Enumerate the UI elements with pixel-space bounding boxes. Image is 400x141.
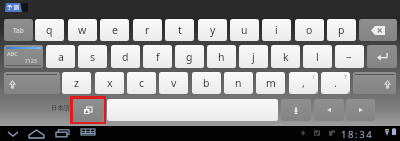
staticText: z — [74, 76, 79, 90]
button[interactable]: Shift — [353, 72, 396, 94]
button[interactable]: Move left — [314, 99, 344, 121]
button[interactable]: Space — [107, 99, 278, 121]
staticText: f — [156, 50, 160, 64]
staticText: j — [252, 50, 255, 64]
button[interactable]: o — [295, 19, 324, 41]
staticText: 日本語 — [51, 104, 70, 112]
staticText: v — [171, 76, 177, 90]
staticText: m — [266, 76, 276, 90]
staticText: l — [316, 50, 319, 64]
button[interactable]: x — [95, 72, 124, 94]
button[interactable]: g — [175, 45, 204, 68]
button[interactable]: c — [127, 72, 156, 94]
button[interactable]: 予測 — [5, 3, 22, 12]
button[interactable]: Home — [29, 130, 44, 138]
staticText: q — [46, 23, 53, 37]
button[interactable]: a — [46, 45, 75, 68]
button[interactable]: Voice input — [281, 99, 311, 121]
button[interactable]: Tab — [4, 19, 33, 41]
button[interactable]: Enter — [367, 45, 397, 68]
button[interactable]: Backspace — [359, 19, 397, 41]
button[interactable]: u — [230, 19, 259, 41]
staticText: Tab — [13, 26, 24, 35]
button[interactable]: y — [198, 19, 227, 41]
staticText: h — [218, 50, 225, 64]
staticText: s — [90, 50, 96, 64]
button[interactable]: l — [303, 45, 332, 68]
staticText: x — [107, 76, 113, 90]
button[interactable]: q — [35, 19, 64, 41]
staticText: . — [334, 76, 337, 90]
button[interactable]: Switch keyboard — [73, 99, 102, 121]
staticText: t — [178, 23, 182, 37]
staticText: b — [203, 76, 210, 90]
staticText: u — [241, 23, 248, 37]
staticText: d — [122, 50, 129, 64]
staticText: 18:34 — [341, 128, 374, 141]
button[interactable]: n — [224, 72, 253, 94]
staticText: − — [346, 50, 353, 64]
staticText: c — [139, 76, 145, 90]
button[interactable]: e — [100, 19, 129, 41]
button[interactable]: p — [327, 19, 356, 41]
button[interactable]: i — [262, 19, 291, 41]
staticText: n — [235, 76, 242, 90]
staticText: w — [78, 23, 87, 37]
button[interactable]: h — [207, 45, 236, 68]
staticText: o — [306, 23, 313, 37]
button[interactable]: . — [321, 72, 350, 94]
button[interactable]: j — [239, 45, 268, 68]
button[interactable]: k — [271, 45, 300, 68]
button[interactable]: Hide keyboard — [8, 132, 18, 136]
button[interactable]: Shift — [4, 72, 60, 94]
button[interactable]: , — [289, 72, 318, 94]
button[interactable]: − — [335, 45, 364, 68]
staticText: e — [112, 23, 118, 37]
button[interactable]: m — [256, 72, 285, 94]
button[interactable]: b — [192, 72, 221, 94]
staticText: ABC — [7, 50, 18, 58]
staticText: y — [210, 23, 216, 37]
staticText: i — [275, 23, 278, 37]
staticText: k — [283, 50, 289, 64]
button[interactable]: Move right — [346, 99, 375, 121]
button[interactable]: v — [159, 72, 188, 94]
button[interactable]: t — [165, 19, 194, 41]
staticText: r — [145, 23, 150, 37]
staticText: g — [186, 50, 193, 64]
staticText: p — [338, 23, 345, 37]
staticText: ? — [344, 73, 347, 81]
button[interactable]: z — [62, 72, 91, 94]
staticText: , — [302, 76, 305, 90]
button[interactable]: d — [111, 45, 140, 68]
button[interactable]: Change keyboard — [81, 129, 95, 135]
staticText: ?123 — [25, 57, 38, 65]
staticText: ! — [313, 73, 315, 81]
staticText: 予測 — [7, 4, 21, 11]
staticText: a — [58, 50, 64, 64]
button[interactable]: r — [133, 19, 162, 41]
button[interactable]: Recent apps — [56, 129, 69, 137]
button[interactable]: s — [78, 45, 107, 68]
button[interactable]: w — [68, 19, 97, 41]
button[interactable]: Switch to ABC — [4, 45, 43, 68]
button[interactable]: f — [143, 45, 172, 68]
